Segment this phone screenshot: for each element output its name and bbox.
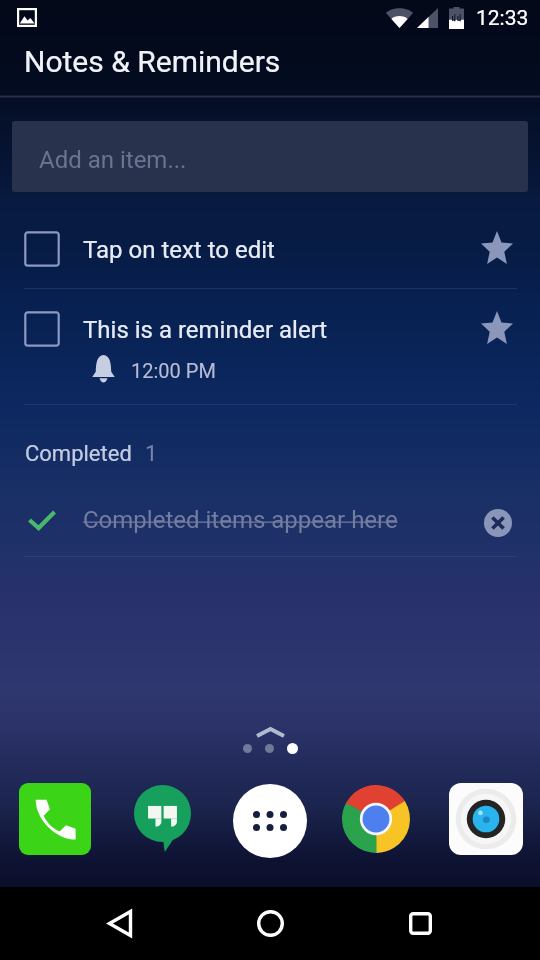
staticText: Tap on text to edit [83,236,275,264]
button[interactable]: Tap on text to edit [0,210,540,289]
staticText: This is a reminder alert [83,316,328,344]
staticText: Completed [25,441,132,467]
button[interactable]: Home [235,887,305,960]
button[interactable]: Phone [19,783,91,855]
staticText: Completed items appear here [83,506,398,534]
staticText: Notes & Reminders [24,44,281,79]
button[interactable]: Star [475,225,519,269]
staticText: 1 [145,441,158,467]
button[interactable]: Remove completed item [478,503,518,543]
button[interactable]: All apps [233,784,307,858]
button[interactable]: Recent apps [385,887,455,960]
button[interactable]: Add an item... [12,121,528,192]
staticText: Add an item... [39,146,187,174]
staticText: 12:33 [476,6,529,31]
button[interactable]: Completed [0,432,540,476]
button[interactable]: Star [475,305,519,349]
button[interactable]: This is a reminder alert [0,289,540,405]
staticText: 12:00 PM [131,359,216,382]
button[interactable]: Chrome [342,785,410,853]
button[interactable]: Back [85,887,155,960]
button[interactable]: Camera [449,783,523,855]
button[interactable]: All apps [248,718,292,748]
button[interactable]: Completed items appear here [0,490,540,557]
button[interactable]: Hangouts [134,785,191,852]
